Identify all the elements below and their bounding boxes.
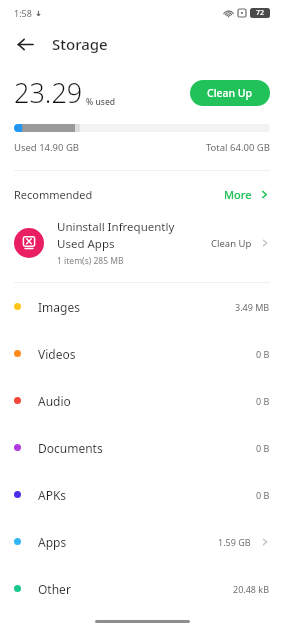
staticText: 20.48 kB bbox=[233, 583, 270, 595]
staticText: Audio bbox=[38, 393, 71, 409]
staticText: Used 14.90 GB bbox=[14, 141, 80, 154]
staticText: 0 B bbox=[256, 489, 270, 501]
staticText: Recommended bbox=[14, 187, 93, 202]
staticText: 1.59 GB bbox=[218, 536, 251, 548]
staticText: More bbox=[224, 187, 252, 202]
button[interactable]: Clean Up bbox=[190, 80, 270, 106]
staticText: Apps bbox=[38, 534, 67, 550]
staticText: Storage bbox=[52, 34, 108, 54]
staticText: 1:58 bbox=[14, 7, 32, 19]
staticText: APKs bbox=[38, 487, 67, 503]
staticText: Clean Up bbox=[207, 86, 253, 100]
staticText: 0 B bbox=[256, 442, 270, 454]
staticText: % used bbox=[86, 96, 116, 108]
staticText: 1 item(s) 285 MB bbox=[57, 255, 124, 267]
button[interactable]: Images bbox=[0, 283, 284, 330]
staticText: Clean Up bbox=[211, 237, 252, 250]
staticText: Total 64.00 GB bbox=[206, 141, 270, 154]
staticText: Videos bbox=[38, 346, 76, 362]
button[interactable]: Back bbox=[14, 33, 36, 55]
staticText: Used Apps bbox=[57, 236, 115, 252]
staticText: 23.29 bbox=[14, 74, 83, 111]
staticText: Other bbox=[38, 581, 71, 597]
button[interactable]: Videos bbox=[0, 330, 284, 377]
staticText: Documents bbox=[38, 440, 103, 456]
button[interactable]: APKs bbox=[0, 471, 284, 518]
staticText: 3.49 MB bbox=[235, 301, 270, 313]
button[interactable]: Apps bbox=[0, 518, 284, 565]
button[interactable]: Documents bbox=[0, 424, 284, 471]
staticText: Uninstall Infrequently bbox=[57, 219, 175, 235]
staticText: Images bbox=[38, 299, 80, 315]
staticText: 0 B bbox=[256, 348, 270, 360]
staticText: 0 B bbox=[256, 395, 270, 407]
button[interactable]: Recommended bbox=[0, 184, 284, 205]
staticText: 72 bbox=[256, 8, 265, 18]
button[interactable]: Uninstall Infrequently bbox=[0, 217, 284, 269]
button[interactable]: Audio bbox=[0, 377, 284, 424]
button[interactable]: Other bbox=[0, 565, 284, 612]
